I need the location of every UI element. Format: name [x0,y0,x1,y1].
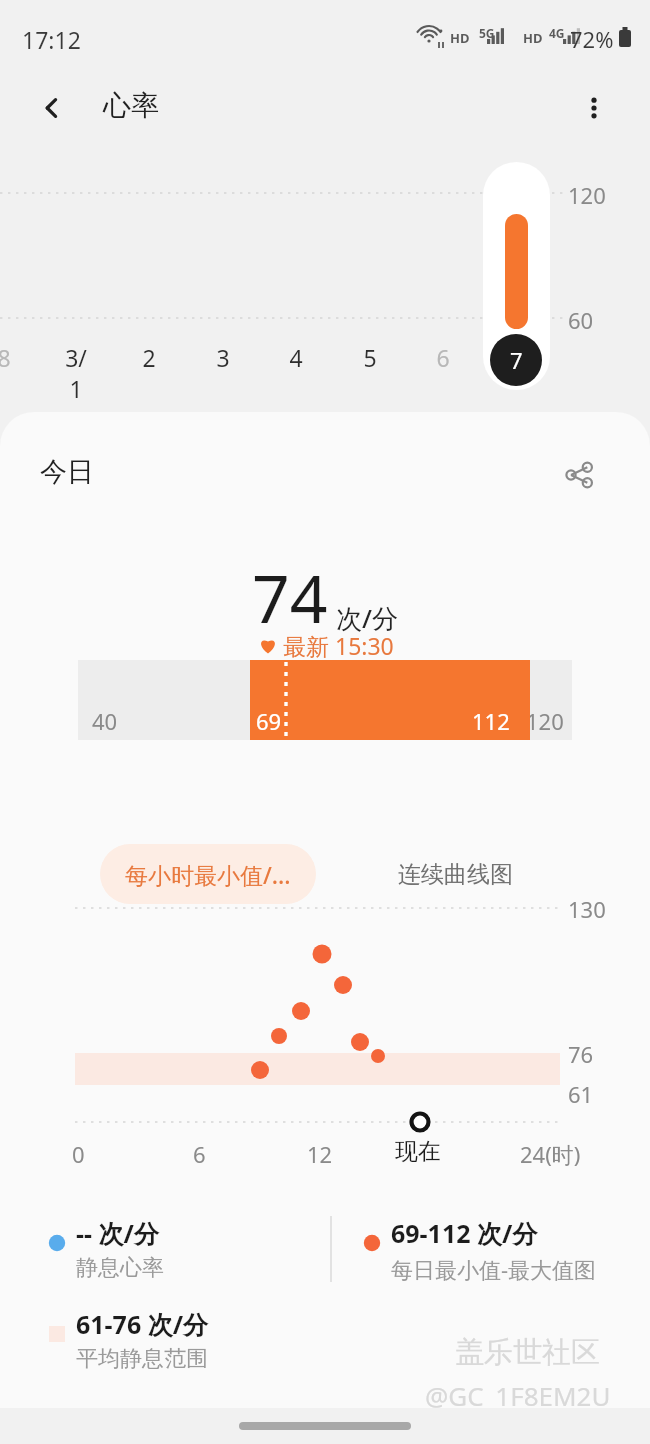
staticText: 次/分 [336,600,399,636]
button[interactable]: More options [566,80,622,136]
staticText: 2 [136,342,162,373]
staticText: 心率 [103,88,159,123]
staticText: 5G [479,25,495,41]
staticText: 静息心率 [76,1254,164,1282]
staticText: 60 [568,305,594,335]
staticText: 69 [256,706,282,736]
button[interactable]: -- 次/分 [48,1216,164,1282]
staticText: 7 [510,345,523,375]
staticText: 4 [283,342,309,373]
staticText: 平均静息范围 [76,1345,208,1373]
button[interactable]: 69-112 次/分 [363,1216,597,1284]
staticText: 40 [92,706,118,736]
button[interactable]: 7 [483,162,550,390]
staticText: 最新 15:30 [283,630,394,661]
staticText: @GC_1F8EM2U [425,1378,611,1408]
staticText: HD [450,29,470,47]
staticText: 74 [252,552,328,642]
staticText: 6 [430,342,456,373]
staticText: 连续曲线图 [398,860,513,889]
staticText: 76 [568,1039,594,1069]
staticText: 每小时最小值/... [125,859,291,890]
staticText: 现在 [395,1137,441,1166]
staticText: 6 [193,1139,206,1169]
staticText: 盖乐世社区 [455,1334,600,1371]
button[interactable]: 连续曲线图 [370,844,540,904]
staticText: 72% [570,24,614,54]
staticText: 每日最小值-最大值图 [391,1254,597,1284]
staticText: 3 [210,342,236,373]
staticText: 0 [72,1139,85,1169]
staticText: 4G [549,25,565,41]
staticText: 8 [0,342,17,373]
button[interactable]: Share [548,444,610,506]
staticText: HD [523,29,543,47]
staticText: 61 [568,1079,594,1109]
staticText: 17:12 [22,24,81,55]
staticText: 120 [526,706,564,736]
button[interactable]: 61-76 次/分 [48,1307,209,1373]
staticText: 24(时) [520,1139,581,1169]
staticText: -- 次/分 [76,1216,159,1250]
staticText: 61-76 次/分 [76,1307,209,1341]
staticText: 69-112 次/分 [391,1216,538,1250]
button[interactable]: 每小时最小值/... [100,844,316,904]
button[interactable]: Back [24,80,80,136]
staticText: 今日 [40,455,94,489]
staticText: 5 [357,342,383,373]
staticText: 12 [307,1139,333,1169]
staticText: 120 [568,180,606,210]
staticText: 3/1 [63,342,89,404]
staticText: 112 [472,706,510,736]
staticText: 130 [568,894,606,924]
